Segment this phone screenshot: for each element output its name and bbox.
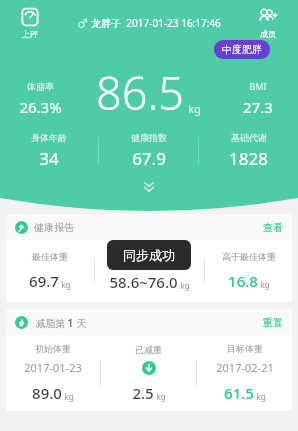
staticText: BMI: [249, 80, 267, 92]
staticText: 中度肥胖: [222, 43, 262, 56]
button[interactable]: 高于最佳体重: [205, 251, 292, 291]
staticText: 61.5: [224, 383, 254, 403]
staticText: 2017-01-23: [24, 360, 82, 375]
staticText: 健康报告: [34, 221, 74, 234]
staticText: kg: [180, 280, 190, 291]
staticText: 69.7: [29, 271, 59, 291]
staticText: 1828: [229, 147, 268, 170]
staticText: kg: [64, 391, 74, 402]
staticText: 健康指数: [131, 132, 167, 143]
staticText: 高于最佳体重: [222, 251, 276, 262]
button[interactable]: 初始体重: [6, 343, 100, 403]
staticText: 34: [39, 147, 59, 170]
staticText: 体脂率: [27, 81, 54, 92]
staticText: 同步成功: [123, 247, 175, 263]
staticText: kg: [61, 279, 71, 290]
staticText: 1: [67, 315, 74, 330]
staticText: kg: [188, 101, 201, 116]
button[interactable]: 上秤: [4, 4, 56, 42]
staticText: 27.3: [243, 97, 273, 117]
staticText: kg: [156, 391, 166, 402]
staticText: 重置: [263, 316, 283, 329]
staticText: 2.5: [132, 383, 154, 403]
staticText: 目标体重: [227, 343, 263, 354]
button[interactable]: 最佳体重: [6, 251, 94, 291]
button[interactable]: 基础代谢: [199, 132, 298, 170]
staticText: 龙胖子 2017-01-23 16:17:46: [91, 16, 221, 30]
button[interactable]: 减脂第: [6, 309, 292, 335]
staticText: kg: [256, 391, 266, 402]
staticText: 查看: [263, 221, 283, 234]
staticText: kg: [260, 279, 270, 290]
staticText: 基础代谢: [231, 132, 267, 143]
staticText: 2017-02-21: [216, 360, 274, 375]
staticText: 初始体重: [35, 343, 71, 354]
staticText: 16.8: [228, 271, 258, 291]
button[interactable]: 中度肥胖: [214, 40, 270, 59]
button[interactable]: 展开: [136, 174, 162, 200]
staticText: 上秤: [22, 29, 38, 39]
button[interactable]: 健康指数: [99, 132, 198, 170]
staticText: 67.9: [132, 147, 166, 170]
button[interactable]: 58.6~76.0: [95, 251, 204, 292]
staticText: 天: [74, 316, 87, 330]
button[interactable]: 目标体重: [197, 343, 292, 403]
staticText: 最佳体重: [32, 251, 68, 262]
staticText: 26.3%: [19, 97, 62, 117]
staticText: 89.0: [32, 383, 62, 403]
button[interactable]: 已减重: [101, 344, 196, 403]
staticText: 86.5: [96, 62, 185, 123]
button[interactable]: 健康报告: [6, 214, 292, 240]
staticText: 身体年龄: [31, 132, 67, 143]
staticText: 58.6~76.0: [109, 272, 178, 292]
staticText: 减脂第: [34, 316, 67, 330]
button[interactable]: 身体年龄: [0, 132, 98, 170]
staticText: 已减重: [135, 344, 162, 355]
staticText: 成员: [260, 29, 276, 39]
button[interactable]: 成员: [242, 4, 294, 42]
